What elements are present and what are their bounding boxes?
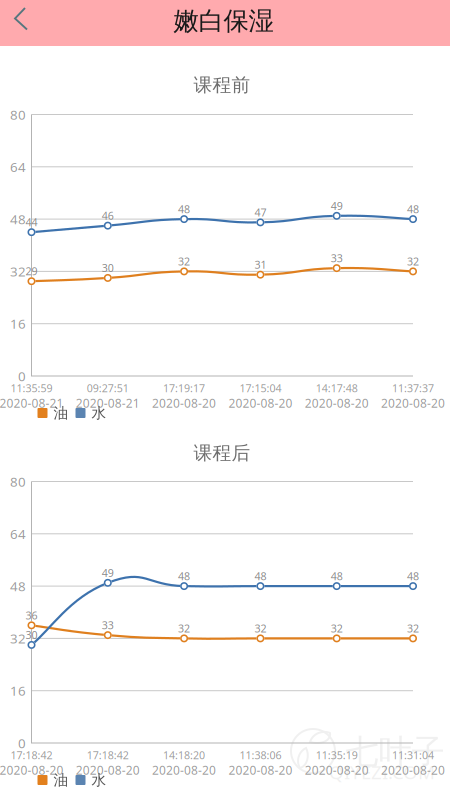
staticText: 80 bbox=[10, 106, 26, 123]
staticText: 2020-08-20 bbox=[305, 762, 369, 778]
staticText: 水 bbox=[91, 771, 106, 789]
staticText: 2020-08-20 bbox=[76, 762, 140, 778]
staticText: 47 bbox=[254, 205, 266, 219]
staticText: 29 bbox=[25, 264, 37, 278]
staticText: 2020-08-20 bbox=[381, 762, 445, 778]
staticText: 48 bbox=[254, 569, 266, 583]
staticText: 48 bbox=[407, 202, 419, 216]
staticText: 课程前 bbox=[193, 73, 250, 96]
staticText: 11:38:06 bbox=[239, 748, 281, 762]
staticText: 17:19:17 bbox=[163, 381, 205, 395]
staticText: 2020-08-20 bbox=[228, 762, 292, 778]
staticText: 水 bbox=[91, 404, 106, 422]
button[interactable]: Back bbox=[0, 0, 44, 43]
staticText: 48 bbox=[10, 577, 26, 595]
staticText: 0 bbox=[18, 367, 26, 385]
staticText: 32 bbox=[254, 621, 266, 635]
staticText: 32 bbox=[331, 621, 343, 635]
staticText: 2020-08-21 bbox=[0, 395, 63, 411]
staticText: 11:35:19 bbox=[316, 748, 358, 762]
button[interactable]: 水 bbox=[75, 771, 106, 789]
staticText: 17:15:04 bbox=[239, 381, 281, 395]
staticText: 30 bbox=[25, 628, 37, 642]
staticText: 11:35:59 bbox=[10, 381, 52, 395]
staticText: 09:27:51 bbox=[87, 381, 129, 395]
staticText: 31 bbox=[254, 258, 266, 272]
staticText: 油 bbox=[53, 404, 68, 422]
staticText: 49 bbox=[102, 566, 114, 580]
staticText: 64 bbox=[10, 525, 26, 543]
staticText: 课程后 bbox=[193, 441, 250, 464]
staticText: 48 bbox=[178, 202, 190, 216]
staticText: 0 bbox=[18, 734, 26, 752]
button[interactable]: 油 bbox=[37, 771, 68, 789]
staticText: 32 bbox=[407, 254, 419, 268]
staticText: 48 bbox=[178, 569, 190, 583]
staticText: QIYEZI.COM bbox=[329, 760, 435, 784]
staticText: 2020-08-20 bbox=[0, 762, 63, 778]
staticText: 30 bbox=[102, 261, 114, 275]
staticText: 嫩白保湿 bbox=[173, 5, 273, 36]
staticText: 2020-08-20 bbox=[228, 395, 292, 411]
staticText: 16 bbox=[10, 682, 26, 699]
staticText: 49 bbox=[331, 199, 343, 213]
staticText: 48 bbox=[331, 569, 343, 583]
button[interactable]: 水 bbox=[75, 404, 106, 422]
staticText: 2020-08-20 bbox=[152, 395, 216, 411]
staticText: 17:18:42 bbox=[87, 748, 129, 762]
staticText: 48 bbox=[10, 210, 26, 228]
staticText: 油 bbox=[53, 771, 68, 789]
staticText: 11:31:04 bbox=[392, 748, 434, 762]
staticText: 2020-08-21 bbox=[76, 395, 140, 411]
staticText: 32 bbox=[178, 621, 190, 635]
staticText: 33 bbox=[331, 251, 343, 265]
button[interactable]: 油 bbox=[37, 404, 68, 422]
staticText: 32 bbox=[10, 262, 26, 280]
staticText: 36 bbox=[25, 608, 37, 622]
staticText: 46 bbox=[102, 209, 114, 223]
staticText: 17:18:42 bbox=[10, 748, 52, 762]
staticText: 16 bbox=[10, 315, 26, 332]
staticText: 32 bbox=[407, 621, 419, 635]
staticText: 11:37:37 bbox=[392, 381, 434, 395]
staticText: 44 bbox=[25, 215, 37, 229]
staticText: 七叶子 bbox=[345, 731, 444, 772]
staticText: 2020-08-20 bbox=[381, 395, 445, 411]
staticText: 33 bbox=[102, 618, 114, 632]
staticText: 2020-08-20 bbox=[305, 395, 369, 411]
staticText: 48 bbox=[407, 569, 419, 583]
staticText: 32 bbox=[10, 629, 26, 647]
staticText: 14:17:48 bbox=[316, 381, 358, 395]
staticText: 80 bbox=[10, 473, 26, 490]
staticText: 64 bbox=[10, 158, 26, 176]
staticText: 32 bbox=[178, 254, 190, 268]
staticText: 14:18:20 bbox=[163, 748, 205, 762]
staticText: 2020-08-20 bbox=[152, 762, 216, 778]
